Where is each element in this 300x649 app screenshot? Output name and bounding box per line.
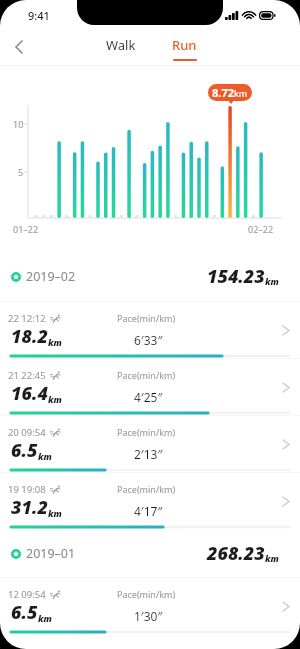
staticText: Pace(min/km) — [117, 312, 176, 324]
staticText: Pace(min/km) — [117, 483, 176, 495]
staticText: 6.5 — [11, 600, 38, 625]
button[interactable]: 21 22:45 — [0, 358, 300, 415]
staticText: 154.23 — [207, 264, 265, 289]
staticText: 18.2 — [11, 324, 48, 349]
staticText: 01–22 — [13, 223, 39, 235]
staticText: km — [48, 336, 62, 348]
staticText: 10 — [13, 118, 24, 130]
staticText: 268.23 — [207, 541, 265, 566]
button[interactable]: Back — [0, 29, 38, 65]
staticText: Pace(min/km) — [117, 588, 176, 600]
staticText: 6.5 — [11, 438, 38, 463]
button[interactable]: Walk — [103, 36, 139, 66]
staticText: 12 09:54 — [8, 588, 46, 601]
staticText: km — [38, 612, 52, 624]
staticText: 5 — [18, 166, 24, 178]
staticText: Run — [172, 36, 197, 54]
button[interactable]: 22 12:12 — [0, 301, 300, 358]
staticText: 31.2 — [11, 495, 48, 520]
staticText: 8.72 — [212, 85, 234, 100]
staticText: km — [234, 87, 248, 99]
staticText: 2019–01 — [26, 545, 76, 562]
staticText: Pace(min/km) — [117, 426, 176, 438]
staticText: km — [265, 552, 279, 564]
staticText: 4′25″ — [134, 389, 163, 405]
staticText: Pace(min/km) — [117, 369, 176, 381]
staticText: 19 19:08 — [8, 483, 46, 496]
staticText: km — [48, 507, 62, 519]
staticText: 1′30″ — [134, 608, 163, 624]
button[interactable]: 19 19:08 — [0, 472, 300, 529]
staticText: 2019–02 — [26, 268, 76, 285]
staticText: 20 09:54 — [8, 426, 46, 439]
staticText: km — [48, 393, 62, 405]
button[interactable]: 12 09:54 — [0, 577, 300, 634]
staticText: 22 12:12 — [8, 312, 46, 325]
staticText: 2′13″ — [134, 446, 163, 462]
staticText: 9:41 — [28, 8, 50, 23]
staticText: 4′17″ — [134, 503, 163, 519]
staticText: 21 22:45 — [8, 369, 46, 382]
button[interactable]: Run — [166, 36, 202, 66]
staticText: 16.4 — [11, 381, 48, 406]
staticText: km — [265, 275, 279, 287]
staticText: Walk — [106, 36, 136, 54]
staticText: 02–22 — [248, 223, 274, 235]
button[interactable]: 20 09:54 — [0, 415, 300, 472]
staticText: km — [38, 450, 52, 462]
staticText: 6′33″ — [134, 332, 163, 348]
